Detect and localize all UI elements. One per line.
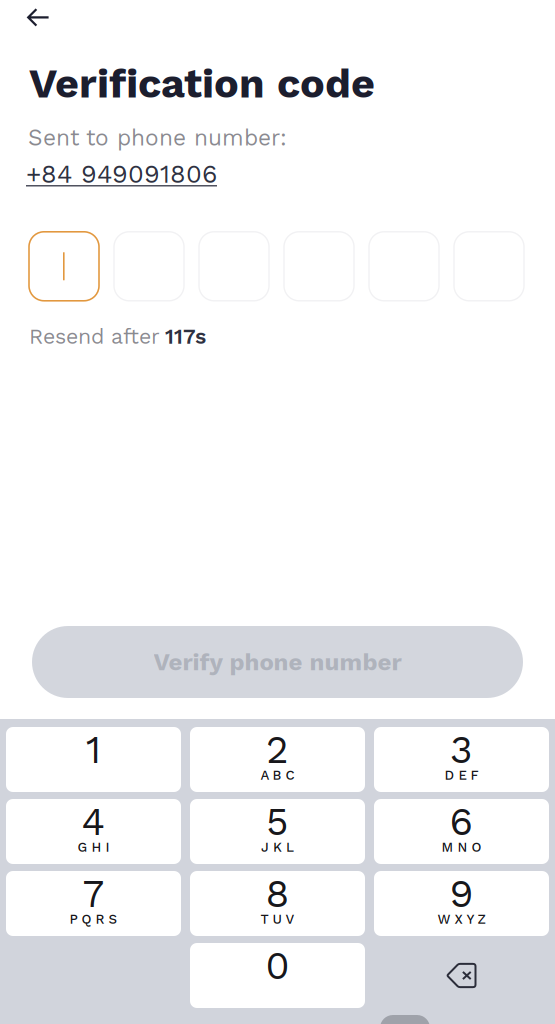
- staticText: P Q R S: [69, 911, 117, 927]
- staticText: 9: [449, 871, 473, 916]
- staticText: 3: [450, 727, 473, 772]
- button[interactable]: 0: [190, 943, 365, 1008]
- staticText: 117s: [165, 324, 206, 349]
- staticText: W X Y Z: [437, 911, 485, 927]
- staticText: 0: [265, 943, 289, 988]
- staticText: G H I: [77, 839, 109, 855]
- staticText: +84 949091806: [26, 159, 217, 189]
- staticText: 6: [449, 799, 473, 844]
- staticText: D E F: [444, 767, 478, 783]
- staticText: Verification code: [29, 59, 375, 107]
- button[interactable]: 4: [6, 799, 181, 864]
- button[interactable]: Back: [0, 0, 66, 37]
- staticText: A B C: [260, 767, 294, 783]
- staticText: J K L: [261, 839, 294, 855]
- button[interactable]: 2: [190, 727, 365, 792]
- button[interactable]: 6: [374, 799, 549, 864]
- button[interactable]: Delete: [374, 943, 549, 1008]
- staticText: Sent to phone number:: [28, 124, 287, 151]
- button[interactable]: 3: [374, 727, 549, 792]
- button[interactable]: +84 949091806: [26, 159, 217, 189]
- button[interactable]: 5: [190, 799, 365, 864]
- staticText: 8: [265, 871, 289, 916]
- staticText: 4: [81, 799, 105, 844]
- staticText: T U V: [260, 911, 294, 927]
- staticText: Resend after: [29, 324, 160, 349]
- button[interactable]: 9: [374, 871, 549, 936]
- button[interactable]: Verify phone number: [32, 626, 523, 698]
- staticText: M N O: [441, 839, 481, 855]
- staticText: Verify phone number: [153, 648, 401, 676]
- button[interactable]: 1: [6, 727, 181, 792]
- button[interactable]: 7: [6, 871, 181, 936]
- button[interactable]: 8: [190, 871, 365, 936]
- staticText: 5: [266, 799, 289, 844]
- staticText: 1: [86, 727, 101, 772]
- staticText: 7: [82, 871, 104, 916]
- staticText: 2: [266, 727, 289, 772]
